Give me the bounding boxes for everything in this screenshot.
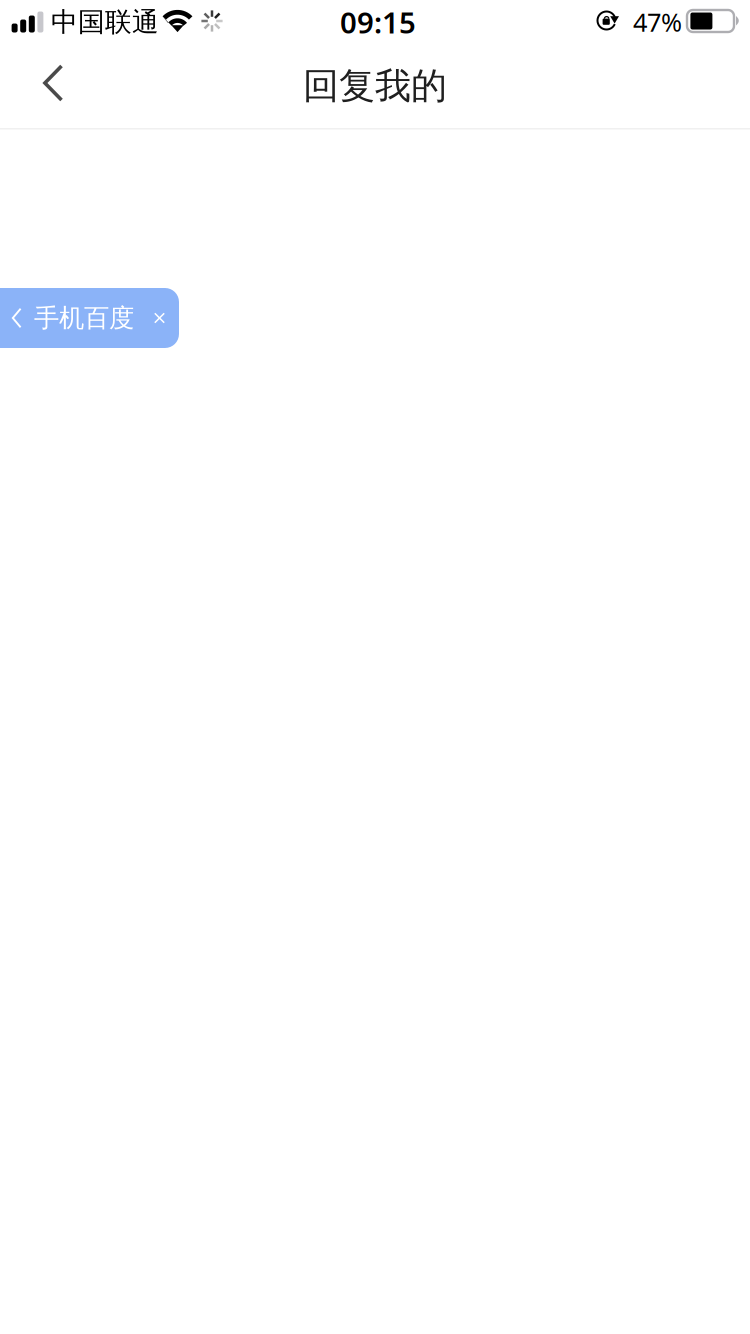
button[interactable]: 返回 [0, 44, 106, 128]
staticText: 回复我的 [303, 64, 447, 108]
staticText: 中国联通 [51, 6, 159, 38]
staticText: 47% [633, 5, 682, 39]
staticText: 09:15 [340, 2, 416, 41]
staticText: 手机百度 [34, 302, 134, 333]
button[interactable]: 返回 手机百度 [0, 288, 179, 348]
